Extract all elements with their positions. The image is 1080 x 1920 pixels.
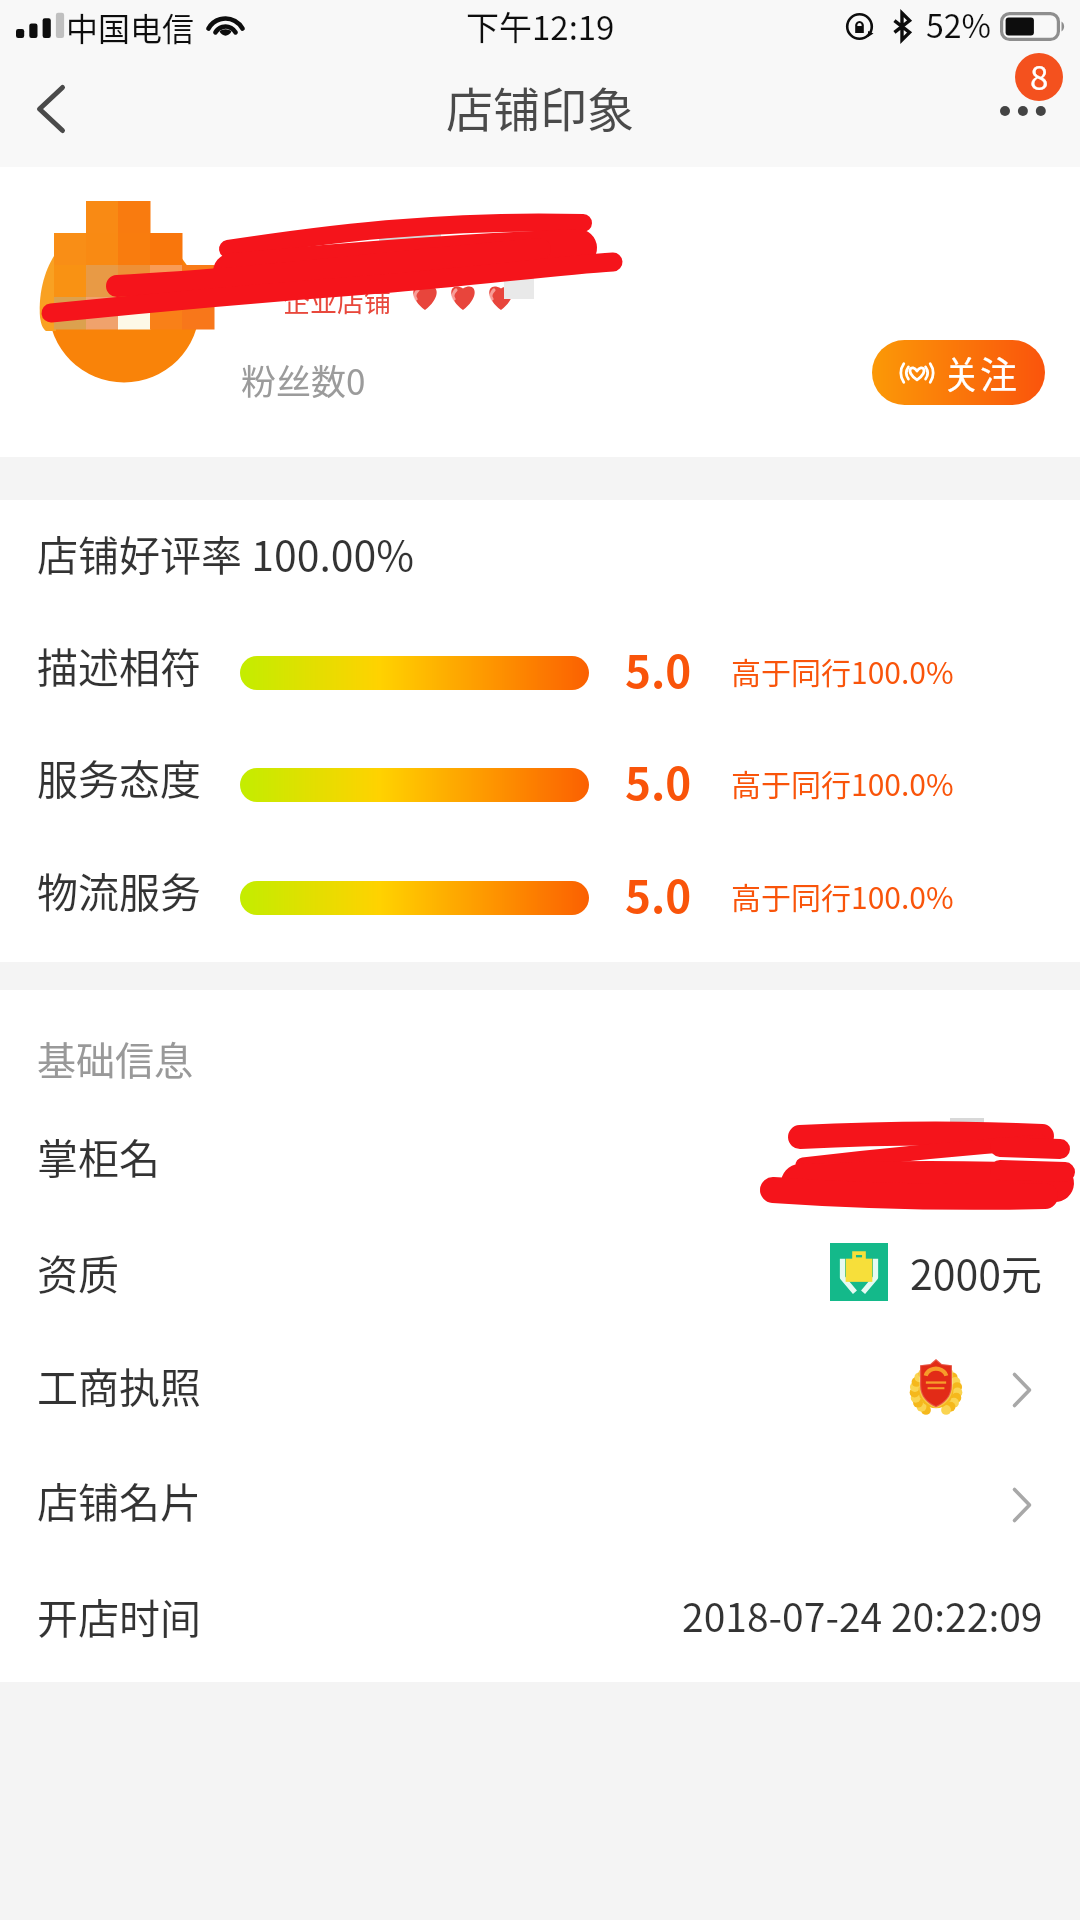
staticText: 店铺名片 [37, 1470, 201, 1529]
button[interactable]: 资质 [0, 1214, 1080, 1328]
staticText: 2000元 [910, 1242, 1043, 1301]
staticText: 5.0 [625, 862, 692, 926]
staticText: 企业店铺 [283, 281, 391, 320]
button[interactable]: 工商执照 [0, 1327, 1080, 1441]
staticText: 店铺好评率 100.00% [37, 523, 415, 582]
button[interactable]: 店铺名片 [0, 1442, 1080, 1556]
staticText: 2018-07-24 20:22:09 [682, 1587, 1043, 1643]
button[interactable]: 掌柜名 [0, 1098, 1080, 1212]
staticText: 高于同行100.0% [731, 761, 954, 804]
staticText: 中国电信 [66, 4, 195, 50]
staticText: 基础信息 [37, 1030, 194, 1086]
staticText: 5.0 [625, 637, 692, 701]
staticText: 工商执照 [37, 1355, 201, 1414]
staticText: 8 [1030, 53, 1049, 100]
staticText: 开店时间 [37, 1586, 201, 1645]
staticText: 描述相符 [37, 635, 201, 694]
staticText: 粉丝数0 [241, 354, 366, 405]
button[interactable]: Back [0, 64, 103, 167]
button[interactable]: 开店时间 [0, 1558, 1080, 1672]
button[interactable]: 关注 [872, 340, 1045, 405]
staticText: 52% [926, 1, 991, 47]
staticText: 服务态度 [37, 747, 201, 806]
staticText: 关注 [943, 346, 1017, 400]
staticText: 高于同行100.0% [731, 649, 954, 692]
staticText: 店铺印象 [446, 72, 634, 140]
staticText: 高于同行100.0% [731, 874, 954, 917]
staticText: 5.0 [625, 749, 692, 813]
staticText: 下午12:19 [466, 2, 615, 50]
staticText: 掌柜名 [37, 1126, 160, 1185]
staticText: 资质 [37, 1242, 119, 1301]
staticText: 物流服务 [37, 860, 201, 919]
button[interactable]: More options [960, 64, 1080, 167]
